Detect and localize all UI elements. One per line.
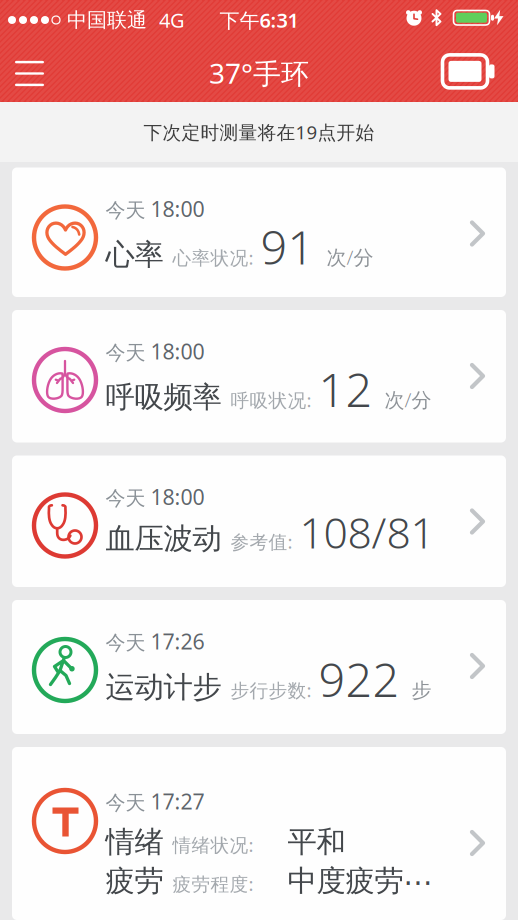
staticText: 步行步数:	[230, 678, 311, 702]
staticText: 18:00	[150, 337, 204, 365]
staticText: 91	[260, 215, 314, 277]
button[interactable]: 今天	[12, 167, 506, 297]
staticText: 18:00	[150, 194, 204, 223]
staticText: 中国联通	[67, 8, 147, 32]
staticText: 平和	[287, 824, 345, 860]
staticText: 17:27	[150, 787, 204, 815]
staticText: 疲劳	[105, 863, 163, 899]
staticText: 下午6:31	[219, 7, 298, 33]
staticText: 今天	[105, 198, 145, 223]
staticText: 中度疲劳⋯	[287, 863, 432, 899]
staticText: 血压波动	[105, 521, 221, 557]
staticText: 17:26	[150, 627, 204, 655]
staticText: 呼吸状况:	[230, 388, 311, 412]
button[interactable]: 今天	[12, 455, 506, 587]
staticText: 下次定时测量将在19点开始	[143, 120, 374, 144]
button[interactable]: Menu	[1, 47, 58, 100]
staticText: 108/81	[299, 503, 434, 560]
staticText: 37°手环	[209, 54, 309, 92]
staticText: 情绪	[105, 824, 163, 860]
staticText: 今天	[105, 630, 145, 655]
staticText: 疲劳程度:	[172, 871, 253, 896]
staticText: 今天	[105, 790, 145, 815]
staticText: 心率	[105, 237, 163, 273]
button[interactable]: 今天	[12, 600, 506, 734]
staticText: 参考值:	[230, 529, 292, 554]
staticText: 922	[318, 648, 399, 710]
button[interactable]: 今天	[12, 747, 506, 920]
staticText: 18:00	[150, 482, 204, 511]
staticText: 次/分	[326, 244, 373, 270]
staticText: 4G	[159, 7, 185, 33]
staticText: 情绪状况:	[172, 832, 253, 857]
staticText: 心率状况:	[172, 245, 253, 270]
staticText: 步	[411, 678, 431, 703]
staticText: 运动计步	[105, 669, 221, 705]
button[interactable]: 今天	[12, 310, 506, 442]
staticText: 今天	[105, 486, 145, 511]
staticText: 呼吸频率	[105, 379, 221, 415]
staticText: 次/分	[384, 386, 431, 413]
staticText: 12	[318, 358, 372, 420]
button[interactable]: Bracelet battery	[431, 47, 499, 96]
staticText: 今天	[105, 340, 145, 365]
